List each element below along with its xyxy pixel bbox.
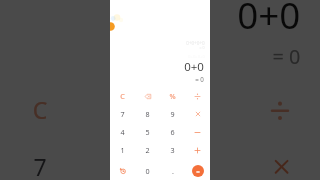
staticText: 6 — [170, 127, 175, 137]
other: Backspace — [112, 103, 131, 119]
staticText: 8 — [112, 151, 128, 180]
staticText: 5 — [145, 127, 150, 137]
button[interactable] — [185, 141, 210, 159]
other: Backspace — [145, 94, 151, 99]
staticText: 7 — [120, 109, 125, 119]
button[interactable]: 8 — [80, 138, 160, 180]
button[interactable]: % — [160, 87, 185, 105]
staticText: = 0 — [272, 42, 301, 68]
button[interactable] — [185, 123, 210, 141]
button[interactable]: Equals — [185, 159, 210, 180]
button[interactable]: C — [0, 80, 80, 138]
staticText: 0+0+0+0 — [186, 40, 205, 46]
staticText: 0+0 — [237, 0, 301, 42]
button[interactable]: 9 — [160, 105, 185, 123]
staticText: 4 — [120, 127, 125, 137]
button[interactable]: 0 — [135, 159, 160, 180]
staticText: C — [120, 91, 125, 101]
staticText: 2 — [145, 145, 150, 155]
staticText: 7 — [32, 151, 48, 180]
button[interactable] — [240, 138, 320, 180]
button[interactable]: Backspace — [80, 80, 160, 138]
button[interactable] — [185, 87, 210, 105]
staticText: = 0 — [195, 75, 204, 83]
button[interactable]: History — [110, 159, 135, 180]
button[interactable]: 3 — [160, 141, 185, 159]
staticText: 9 — [170, 109, 175, 119]
staticText: C — [32, 93, 48, 125]
button[interactable]: 4 — [110, 123, 135, 141]
button[interactable] — [240, 80, 320, 138]
staticText: 9 — [192, 151, 208, 180]
button[interactable]: 5 — [135, 123, 160, 141]
button[interactable]: 9 — [160, 138, 240, 180]
staticText: 8 — [145, 109, 150, 119]
staticText: 1 — [120, 145, 125, 155]
button[interactable]: C — [110, 87, 135, 105]
button[interactable]: 1 — [110, 141, 135, 159]
staticText: = 0 — [199, 45, 205, 50]
button[interactable]: 7 — [0, 138, 80, 180]
button[interactable]: 8 — [135, 105, 160, 123]
other: Equals — [192, 165, 204, 177]
button[interactable]: 2 — [135, 141, 160, 159]
button[interactable]: % — [160, 80, 240, 138]
other: History — [120, 168, 126, 174]
button[interactable] — [185, 105, 210, 123]
staticText: . — [172, 166, 174, 176]
staticText: % — [189, 93, 211, 125]
button[interactable]: . — [160, 159, 185, 180]
staticText: 0 — [145, 166, 150, 176]
button[interactable]: 6 — [160, 123, 185, 141]
staticText: = — [196, 167, 200, 175]
staticText: 3 — [170, 145, 175, 155]
button[interactable]: Backspace — [135, 87, 160, 105]
staticText: 0+0 — [184, 59, 204, 75]
button[interactable]: 7 — [110, 105, 135, 123]
staticText: % — [169, 91, 176, 101]
